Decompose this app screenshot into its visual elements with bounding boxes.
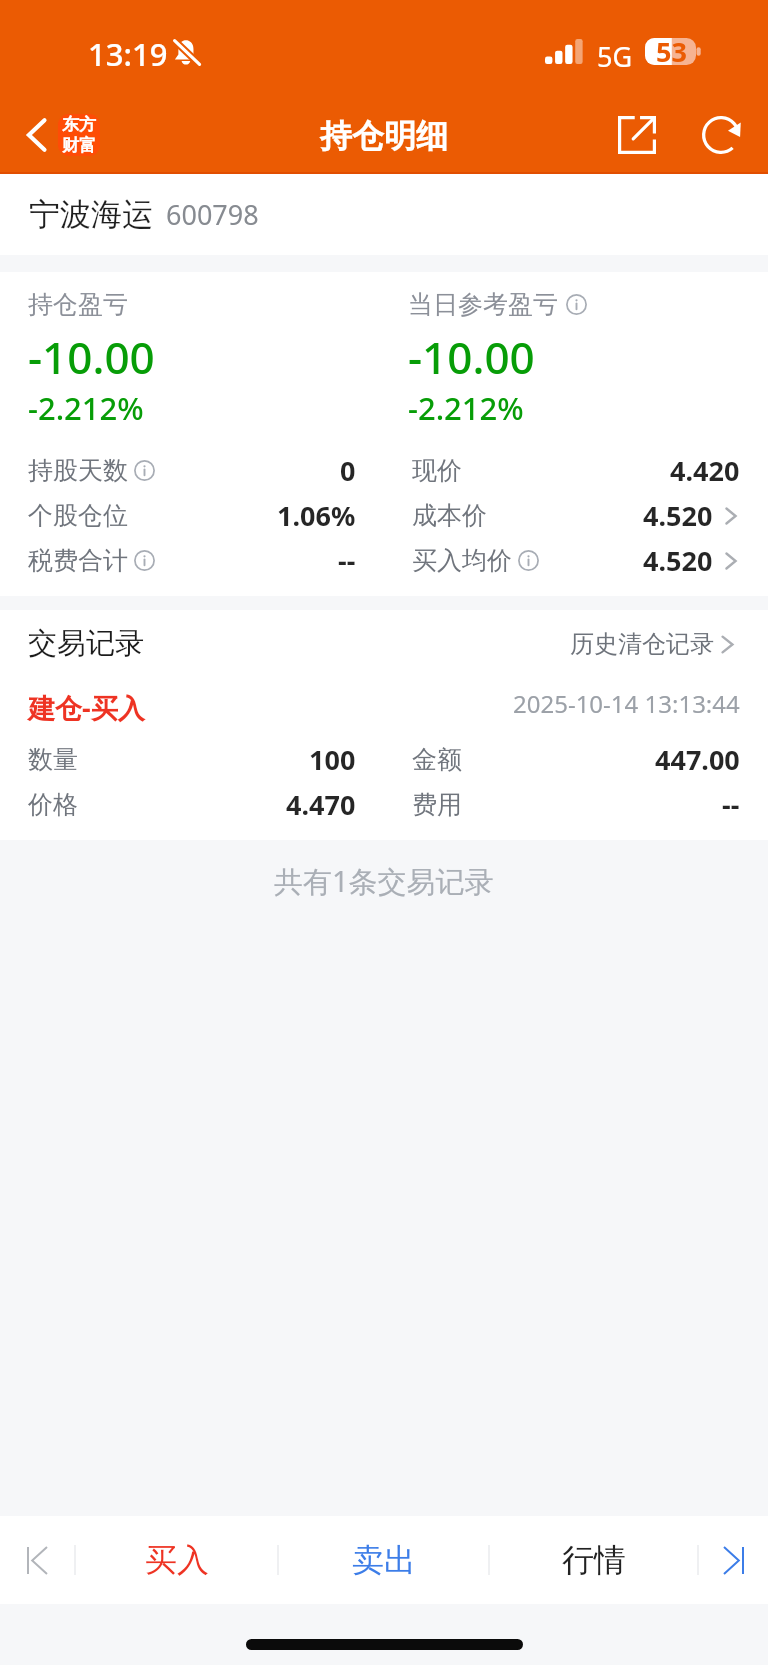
- staticText: 当日参考盈亏: [408, 289, 558, 320]
- staticText: 4.520: [643, 497, 713, 534]
- button[interactable]: 返回: [10, 109, 62, 161]
- staticText: 交易记录: [28, 625, 144, 662]
- staticText: 共有1条交易记录: [274, 861, 494, 901]
- button[interactable]: 刷新: [695, 109, 747, 161]
- staticText: 4.470: [286, 786, 356, 823]
- staticText: 持仓明细: [320, 116, 448, 156]
- staticText: --: [338, 542, 356, 579]
- staticText: 13:19: [88, 33, 168, 75]
- staticText: -10.00: [28, 327, 155, 387]
- staticText: 税费合计: [28, 545, 128, 576]
- staticText: --: [722, 786, 740, 823]
- staticText: 1.06%: [277, 497, 356, 534]
- staticText: 费用: [412, 789, 462, 820]
- staticText: 成本价: [412, 500, 487, 531]
- staticText: 600798: [166, 196, 259, 233]
- staticText: 4.520: [643, 542, 713, 579]
- button[interactable]: 买入: [76, 1516, 277, 1604]
- staticText: 建仓-买入: [28, 689, 145, 726]
- staticText: -10.00: [408, 327, 535, 387]
- staticText: 个股仓位: [28, 500, 128, 531]
- button[interactable]: 分享: [611, 109, 663, 161]
- staticText: 数量: [28, 744, 78, 775]
- button[interactable]: 成本价: [412, 493, 744, 538]
- staticText: 东方: [62, 114, 96, 135]
- staticText: 4.420: [670, 452, 740, 489]
- staticText: 卖出: [352, 1540, 416, 1580]
- staticText: 买入: [145, 1540, 209, 1580]
- button[interactable]: 行情: [490, 1516, 697, 1604]
- staticText: -2.212%: [28, 387, 144, 429]
- button[interactable]: 历史清仓记录: [570, 629, 734, 659]
- staticText: 价格: [28, 789, 78, 820]
- staticText: 447.00: [655, 741, 740, 778]
- button[interactable]: 上一只股票: [0, 1516, 74, 1604]
- staticText: 100: [309, 741, 356, 778]
- button[interactable]: 卖出: [279, 1516, 488, 1604]
- staticText: -2.212%: [408, 387, 524, 429]
- staticText: 2025-10-14 13:13:44: [513, 687, 740, 720]
- staticText: 持股天数: [28, 455, 128, 486]
- staticText: 现价: [412, 455, 462, 486]
- staticText: 持仓盈亏: [28, 289, 128, 320]
- staticText: 53: [656, 33, 687, 70]
- staticText: 金额: [412, 744, 462, 775]
- staticText: 行情: [562, 1540, 626, 1580]
- staticText: 财富: [62, 135, 96, 156]
- staticText: 0: [340, 452, 356, 489]
- staticText: 宁波海运: [29, 195, 153, 234]
- button[interactable]: 下一只股票: [699, 1516, 768, 1604]
- staticText: 5G: [597, 38, 633, 75]
- button[interactable]: 东方财富: [58, 114, 100, 156]
- staticText: 历史清仓记录: [570, 629, 714, 659]
- button[interactable]: 买入均价: [412, 538, 744, 583]
- staticText: 买入均价: [412, 545, 512, 576]
